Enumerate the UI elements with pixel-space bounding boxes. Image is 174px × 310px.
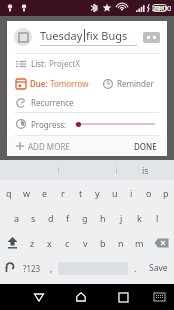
- button[interactable]: z: [24, 230, 41, 255]
- staticText: .: [134, 262, 137, 274]
- staticText: f: [66, 212, 70, 224]
- staticText: w: [23, 187, 31, 199]
- staticText: i: [130, 187, 133, 199]
- button[interactable]: j: [112, 205, 130, 230]
- button[interactable]: Backspace: [148, 230, 174, 255]
- staticText: m: [135, 237, 144, 249]
- button[interactable]: List:: [7, 54, 167, 73]
- button[interactable]: n: [112, 230, 130, 255]
- button[interactable]: .: [128, 255, 142, 281]
- staticText: Tuesday: [40, 28, 83, 43]
- button[interactable]: Progress:: [16, 113, 158, 135]
- staticText: a: [14, 212, 20, 224]
- button[interactable]: Complete task: [14, 28, 32, 46]
- staticText: b: [100, 237, 106, 249]
- button[interactable]: y: [89, 180, 106, 205]
- staticText: o: [146, 187, 152, 199]
- staticText: ,: [50, 262, 53, 274]
- staticText: ProjectX: [49, 58, 80, 69]
- staticText: s: [31, 212, 36, 224]
- staticText: y: [95, 187, 100, 199]
- staticText: ADD MORE: [28, 141, 70, 152]
- button[interactable]: l: [148, 205, 166, 230]
- staticText: DONE: [134, 141, 157, 152]
- button[interactable]: v: [76, 230, 94, 255]
- button[interactable]: ,: [44, 255, 58, 281]
- staticText: List:: [31, 58, 49, 69]
- button[interactable]: Save: [142, 255, 174, 281]
- button[interactable]: u: [106, 180, 123, 205]
- staticText: Progress:: [31, 119, 67, 130]
- button[interactable]: k: [130, 205, 148, 230]
- button[interactable]: ?123: [20, 255, 44, 281]
- button[interactable]: s: [25, 205, 42, 230]
- staticText: is: [142, 164, 149, 176]
- button[interactable]: DONE: [124, 136, 167, 156]
- button[interactable]: Home: [60, 284, 102, 310]
- button[interactable]: h: [94, 205, 112, 230]
- button[interactable]: t: [72, 180, 89, 205]
- button[interactable]: m: [130, 230, 148, 255]
- button[interactable]: Switch keyboard: [144, 284, 174, 310]
- staticText: r: [61, 187, 65, 199]
- staticText: e: [42, 187, 48, 199]
- button[interactable]: o: [140, 180, 157, 205]
- staticText: Due:: [30, 78, 50, 89]
- staticText: l: [156, 212, 159, 224]
- button[interactable]: Reminder: [103, 78, 154, 89]
- button[interactable]: a: [8, 205, 25, 230]
- button[interactable]: Voice input: [0, 255, 20, 281]
- staticText: Reminder: [117, 78, 154, 89]
- button[interactable]: w: [18, 180, 36, 205]
- button[interactable]: Recurrence: [7, 93, 167, 112]
- staticText: x: [47, 237, 52, 249]
- button[interactable]: q: [0, 180, 18, 205]
- button[interactable]: More options: [143, 32, 160, 43]
- button[interactable]: d: [42, 205, 59, 230]
- button[interactable]: Recent apps: [102, 284, 144, 310]
- staticText: u: [112, 187, 118, 199]
- button[interactable]: ADD MORE: [7, 136, 124, 156]
- button[interactable]: b: [94, 230, 112, 255]
- button[interactable]: g: [76, 205, 94, 230]
- staticText: z: [30, 237, 35, 249]
- staticText: t: [79, 187, 83, 199]
- staticText: Recurrence: [31, 97, 74, 108]
- button[interactable]: Shift: [0, 230, 24, 255]
- staticText: Tomorrow: [50, 78, 89, 89]
- button[interactable]: is: [117, 160, 174, 180]
- button[interactable]: f: [59, 205, 76, 230]
- button[interactable]: Back: [18, 284, 60, 310]
- staticText: k: [137, 212, 142, 224]
- button[interactable]: i: [123, 180, 140, 205]
- button[interactable]: x: [41, 230, 58, 255]
- staticText: g: [82, 212, 88, 224]
- staticText: d: [48, 212, 54, 224]
- staticText: j: [120, 212, 123, 224]
- staticText: h: [100, 212, 106, 224]
- staticText: Save: [149, 262, 168, 274]
- button[interactable]: Due:: [16, 78, 89, 89]
- staticText: 23:00: [152, 3, 172, 13]
- staticText: n: [118, 237, 124, 249]
- button[interactable]: p: [157, 180, 174, 205]
- staticText: q: [6, 187, 12, 199]
- staticText: fix Bugs: [86, 28, 128, 43]
- staticText: ?123: [23, 263, 41, 274]
- staticText: v: [83, 237, 88, 249]
- button[interactable]: e: [36, 180, 54, 205]
- staticText: p: [163, 187, 169, 199]
- staticText: c: [65, 237, 70, 249]
- button[interactable]: c: [58, 230, 76, 255]
- button[interactable]: r: [54, 180, 72, 205]
